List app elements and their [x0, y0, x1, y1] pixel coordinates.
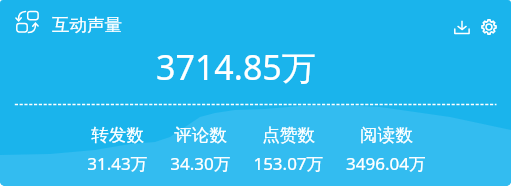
staticText: 点赞数 — [262, 124, 315, 146]
staticText: 153.07万 — [253, 152, 324, 175]
button[interactable]: 评论数 — [170, 124, 231, 175]
button[interactable]: 阅读数 — [346, 124, 426, 175]
staticText: 3714.85万 — [156, 44, 316, 90]
button[interactable]: 转发数 — [87, 124, 148, 175]
staticText: 3496.04万 — [346, 152, 426, 175]
staticText: 评论数 — [174, 124, 227, 146]
staticText: 31.43万 — [87, 152, 148, 175]
staticText: 互动声量 — [52, 14, 122, 36]
staticText: 阅读数 — [360, 124, 413, 146]
button[interactable]: 互动声量 — [15, 10, 122, 34]
button[interactable]: Settings — [478, 16, 500, 38]
staticText: 转发数 — [91, 124, 144, 146]
button[interactable]: Download — [451, 16, 473, 38]
staticText: 34.30万 — [170, 152, 231, 175]
button[interactable]: 点赞数 — [253, 124, 324, 175]
